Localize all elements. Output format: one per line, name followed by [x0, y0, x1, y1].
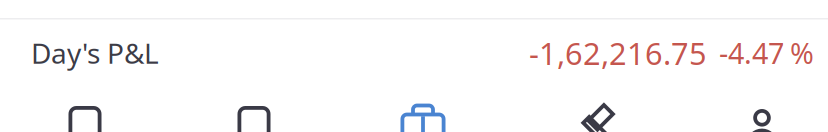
button[interactable]: Profile	[687, 107, 828, 132]
button[interactable]: Orders	[179, 106, 329, 132]
staticText: -4.47	[719, 33, 784, 72]
button[interactable]: Bids	[520, 101, 670, 132]
button[interactable]: Day's P&L	[0, 22, 828, 84]
staticText: -1,62,216.75	[529, 32, 707, 74]
staticText: %	[790, 33, 814, 72]
button[interactable]: Watchlist	[10, 106, 160, 132]
staticText: Day's P&L	[31, 34, 159, 72]
button[interactable]: Portfolio	[348, 105, 498, 132]
